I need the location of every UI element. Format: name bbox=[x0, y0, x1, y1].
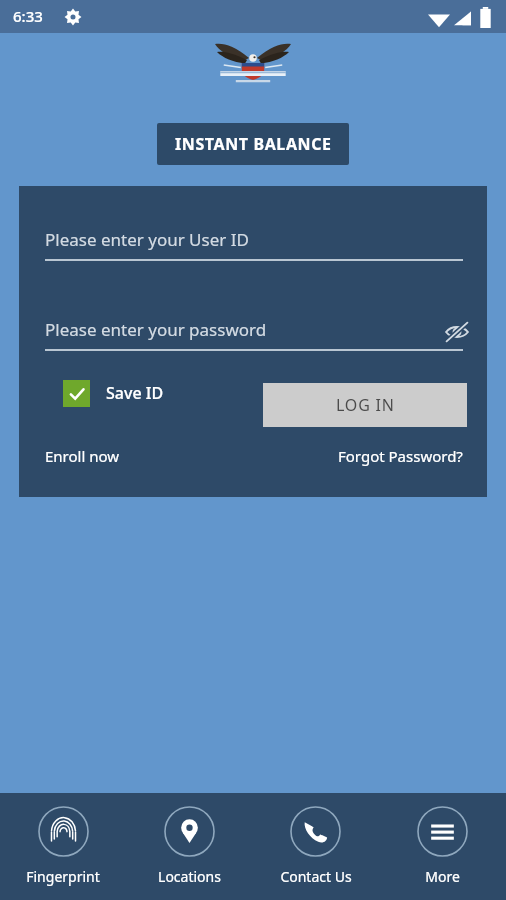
button[interactable]: More bbox=[379, 793, 506, 886]
button[interactable]: Locations bbox=[126, 793, 252, 886]
staticText: Please enter your password bbox=[45, 318, 267, 341]
staticText: Please enter your User ID bbox=[45, 228, 249, 251]
button[interactable]: Please enter your password bbox=[45, 306, 425, 352]
staticText: Forgot Password? bbox=[338, 446, 463, 466]
staticText: Save ID bbox=[106, 382, 164, 404]
staticText: Contact Us bbox=[280, 867, 352, 886]
button[interactable]: Show password bbox=[437, 312, 477, 352]
button[interactable]: Save ID bbox=[63, 376, 164, 410]
button[interactable]: INSTANT BALANCE bbox=[157, 123, 349, 165]
button[interactable]: Fingerprint bbox=[0, 793, 126, 886]
staticText: More bbox=[425, 867, 460, 886]
staticText: Locations bbox=[158, 867, 221, 886]
staticText: LOG IN bbox=[336, 394, 395, 416]
staticText: Fingerprint bbox=[26, 867, 100, 886]
staticText: INSTANT BALANCE bbox=[175, 133, 332, 155]
button[interactable]: Enroll now bbox=[45, 439, 120, 473]
staticText: 6:33 bbox=[13, 6, 43, 26]
button[interactable]: Contact Us bbox=[252, 793, 379, 886]
button[interactable]: Please enter your User ID bbox=[45, 216, 463, 262]
staticText: Enroll now bbox=[45, 446, 120, 466]
button[interactable]: LOG IN bbox=[263, 383, 467, 427]
button[interactable]: Forgot Password? bbox=[337, 439, 463, 473]
